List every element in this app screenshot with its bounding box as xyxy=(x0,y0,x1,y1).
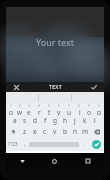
button[interactable]: 7 xyxy=(64,103,74,115)
staticText: ?123 xyxy=(8,141,18,147)
staticText: s xyxy=(23,116,27,125)
button[interactable]: l xyxy=(90,115,100,126)
button[interactable]: f xyxy=(40,115,50,126)
staticText: Your text xyxy=(6,36,104,48)
button[interactable]: Recents xyxy=(71,153,104,169)
button[interactable]: m xyxy=(80,126,90,137)
button[interactable]: Done xyxy=(84,82,104,92)
staticText: o xyxy=(87,108,91,115)
staticText: 4 xyxy=(38,103,41,108)
button[interactable]: 2 xyxy=(15,103,24,115)
staticText: , xyxy=(24,140,26,148)
staticText: g xyxy=(53,116,57,125)
staticText: p xyxy=(97,108,101,115)
staticText: 2 xyxy=(19,103,22,108)
button[interactable]: a xyxy=(10,115,20,126)
button[interactable]: s xyxy=(20,115,30,126)
staticText: w xyxy=(17,108,23,115)
staticText: 8 xyxy=(78,103,81,108)
button[interactable]: n xyxy=(70,126,80,137)
staticText: 1 xyxy=(10,103,13,108)
staticText: u xyxy=(67,108,72,115)
button[interactable]: b xyxy=(60,126,70,137)
button[interactable]: j xyxy=(70,115,80,126)
staticText: j xyxy=(74,116,76,125)
staticText: i xyxy=(79,108,81,115)
button[interactable]: h xyxy=(60,115,70,126)
staticText: a xyxy=(13,116,17,125)
staticText: 0 xyxy=(98,103,101,108)
staticText: q xyxy=(9,108,13,115)
staticText: t xyxy=(48,108,51,115)
button[interactable]: Home xyxy=(38,153,71,169)
button[interactable]: 5 xyxy=(44,103,54,115)
staticText: b xyxy=(63,127,67,136)
button[interactable]: x xyxy=(30,126,40,137)
staticText: 9 xyxy=(88,103,91,108)
staticText: 7 xyxy=(68,103,71,108)
button[interactable]: z xyxy=(20,126,30,137)
button[interactable]: 3 xyxy=(24,103,34,115)
staticText: TEXT xyxy=(49,84,62,91)
button[interactable]: 6 xyxy=(54,103,64,115)
staticText: z xyxy=(23,127,27,136)
staticText: 5 xyxy=(48,103,51,108)
button[interactable]: 1 xyxy=(6,103,15,115)
button[interactable]: 8 xyxy=(74,103,84,115)
button[interactable]: Period xyxy=(79,137,88,151)
staticText: f xyxy=(44,116,47,125)
button[interactable]: Backspace xyxy=(90,126,104,137)
staticText: v xyxy=(53,127,57,136)
staticText: 3 xyxy=(28,103,31,108)
button[interactable]: Cancel xyxy=(6,82,26,92)
staticText: . xyxy=(83,140,85,148)
button[interactable]: Enter xyxy=(92,140,101,149)
staticText: c xyxy=(43,127,47,136)
staticText: h xyxy=(63,116,68,125)
staticText: n xyxy=(73,127,78,136)
staticText: r xyxy=(38,108,41,115)
button[interactable]: Back xyxy=(6,153,38,169)
button[interactable]: Shift xyxy=(6,126,20,137)
button[interactable]: 0 xyxy=(94,103,104,115)
button[interactable]: ?123 xyxy=(6,137,20,151)
staticText: m xyxy=(82,127,89,136)
button[interactable]: v xyxy=(50,126,60,137)
button[interactable]: 9 xyxy=(84,103,94,115)
button[interactable]: c xyxy=(40,126,50,137)
button[interactable]: d xyxy=(30,115,40,126)
button[interactable]: g xyxy=(50,115,60,126)
staticText: x xyxy=(33,127,37,136)
staticText: l xyxy=(94,116,96,125)
button[interactable]: k xyxy=(80,115,90,126)
staticText: k xyxy=(83,116,87,125)
button[interactable]: 4 xyxy=(34,103,44,115)
staticText: 6 xyxy=(58,103,61,108)
staticText: e xyxy=(27,108,31,115)
staticText: y xyxy=(57,108,61,115)
staticText: d xyxy=(33,116,37,125)
button[interactable]: Comma xyxy=(20,137,29,151)
